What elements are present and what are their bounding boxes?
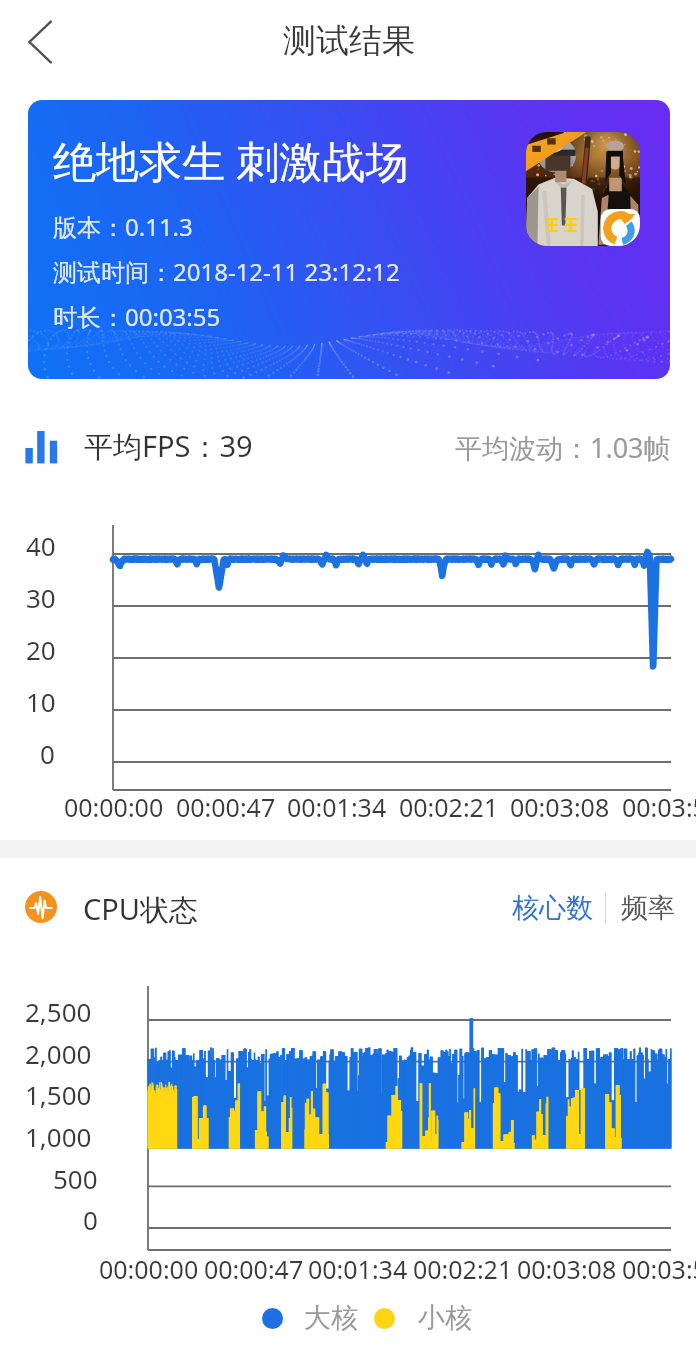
staticText: 00:03:08 [517, 1252, 617, 1286]
staticText: 2,500 [25, 994, 92, 1029]
staticText: 时长：00:03:55 [53, 300, 221, 333]
staticText: 绝地求生 刺激战场 [53, 131, 409, 190]
staticText: 大核 [304, 1301, 358, 1335]
staticText: 1,500 [25, 1077, 92, 1112]
staticText: 00:03:55 [622, 1252, 696, 1286]
button[interactable]: 频率 [615, 885, 681, 931]
button[interactable]: 绝地求生 刺激战场 [28, 100, 670, 379]
staticText: 00:01:34 [287, 790, 387, 824]
staticText: 10 [26, 684, 56, 719]
staticText: 平均FPS：39 [84, 426, 253, 466]
staticText: 00:03:08 [510, 790, 610, 824]
staticText: 小核 [418, 1301, 472, 1335]
staticText: 00:02:21 [413, 1252, 513, 1286]
staticText: 测试时间：2018-12-11 23:12:12 [53, 255, 400, 288]
button[interactable]: Back [12, 14, 68, 70]
staticText: 版本：0.11.3 [53, 210, 193, 243]
staticText: 00:00:00 [64, 790, 164, 824]
staticText: 频率 [621, 891, 675, 925]
staticText: 00:01:34 [308, 1252, 408, 1286]
button[interactable]: 核心数 [506, 885, 599, 931]
staticText: 30 [26, 580, 56, 615]
staticText: 00:03:55 [622, 790, 696, 824]
staticText: 00:00:00 [99, 1252, 199, 1286]
staticText: 00:00:47 [204, 1252, 304, 1286]
staticText: 测试结果 [283, 20, 415, 62]
staticText: 40 [26, 528, 56, 563]
staticText: 平均波动：1.03帧 [455, 429, 671, 466]
staticText: 00:00:47 [176, 790, 276, 824]
staticText: 20 [26, 632, 56, 667]
staticText: 核心数 [512, 891, 593, 925]
staticText: 500 [53, 1161, 98, 1196]
staticText: 00:02:21 [399, 790, 499, 824]
staticText: CPU状态 [83, 889, 199, 929]
staticText: 0 [83, 1202, 98, 1237]
staticText: 2,000 [25, 1036, 92, 1071]
staticText: 0 [40, 736, 55, 771]
staticText: 1,000 [25, 1119, 92, 1154]
